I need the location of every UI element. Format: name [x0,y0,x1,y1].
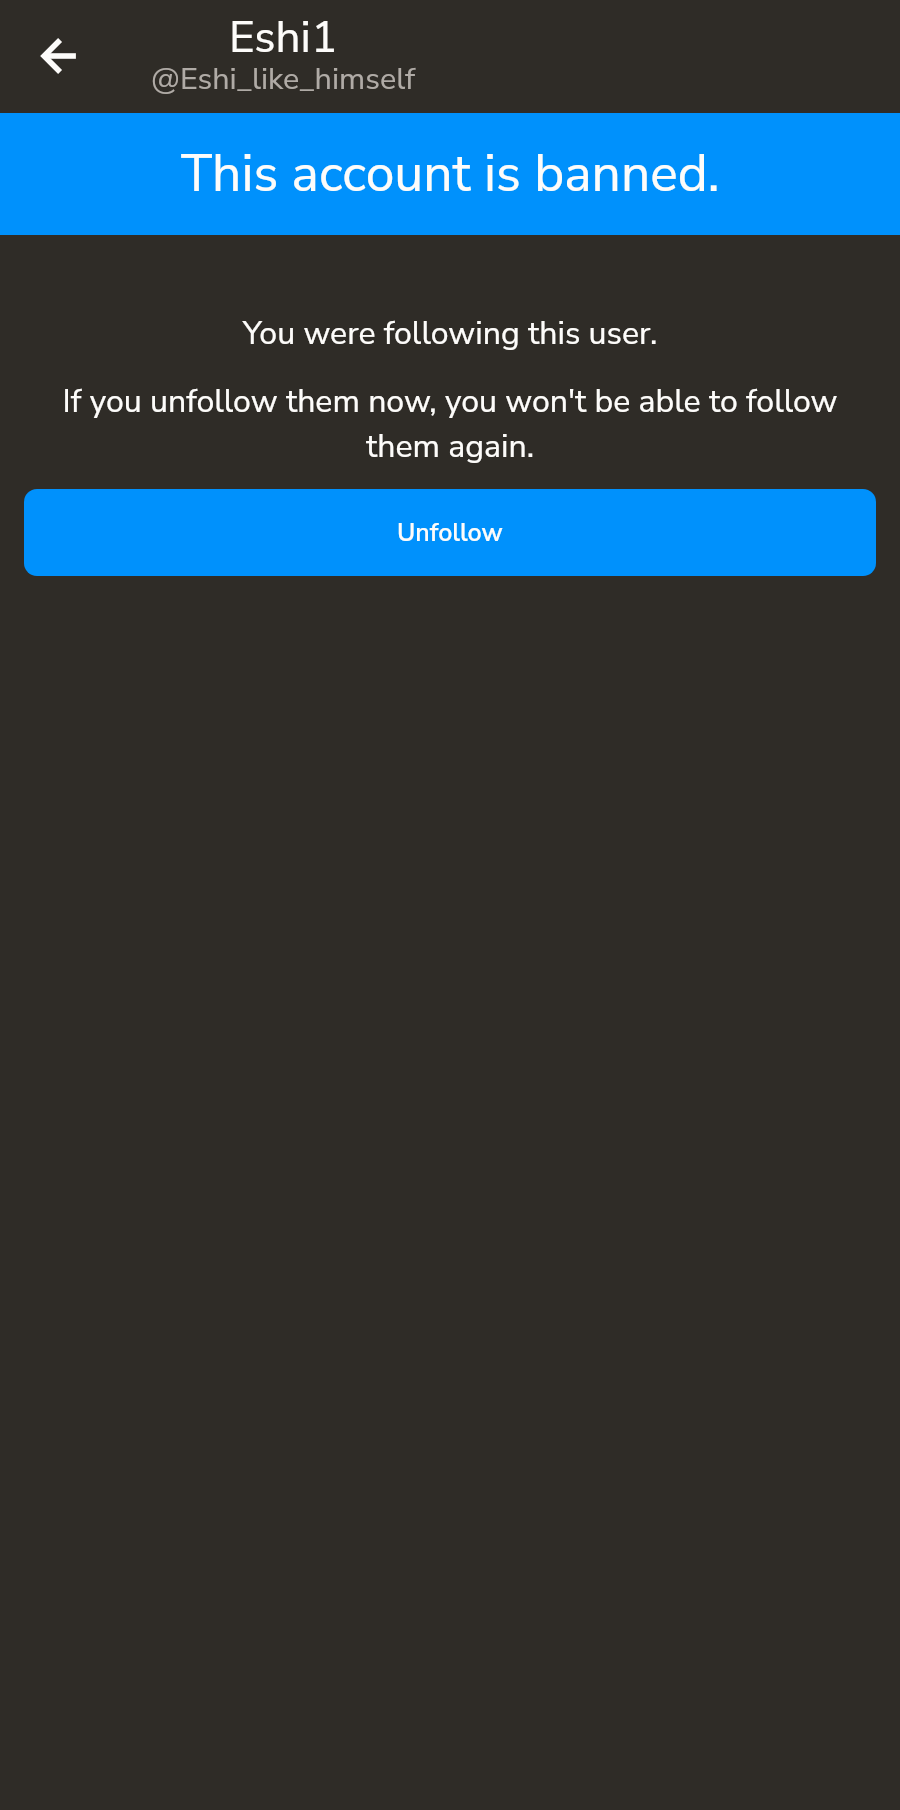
button[interactable]: Back [15,13,101,99]
staticText: @Eshi_like_himself [151,58,416,100]
staticText: Eshi1 [229,8,338,56]
staticText: Unfollow [397,516,503,550]
staticText: This account is banned. [181,139,720,209]
button[interactable]: Unfollow [24,489,876,576]
staticText: You were following this user. [0,312,900,356]
staticText: If you unfollow them now, you won't be a… [40,380,860,468]
